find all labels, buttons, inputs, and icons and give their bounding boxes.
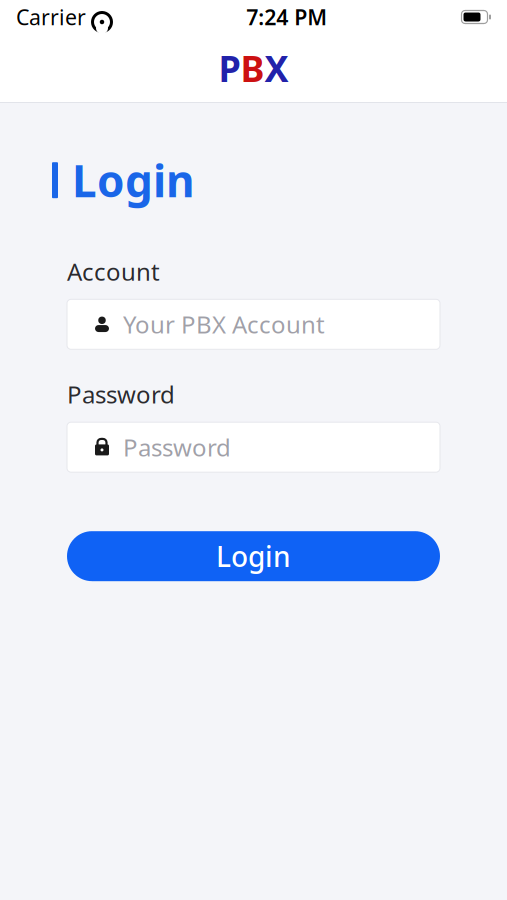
staticText: 7:24 PM (246, 3, 327, 31)
button[interactable]: Login (67, 531, 440, 581)
staticText: Account (67, 255, 160, 287)
staticText: Your PBX Account (123, 308, 325, 340)
staticText: X (264, 44, 288, 92)
staticText: Password (67, 378, 175, 410)
staticText: Login (72, 151, 195, 209)
staticText: Login (216, 538, 291, 575)
staticText: B (240, 44, 264, 92)
staticText: P (218, 44, 240, 92)
staticText: Carrier (16, 3, 86, 31)
staticText: Password (123, 431, 231, 463)
